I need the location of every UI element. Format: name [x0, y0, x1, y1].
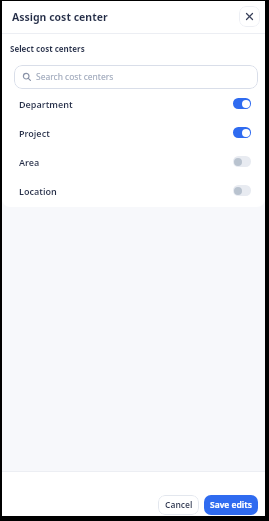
staticText: Select cost centers	[10, 43, 85, 54]
staticText: Project	[19, 127, 50, 139]
button[interactable]: Search cost centers	[14, 65, 258, 89]
button[interactable]: Department	[19, 89, 251, 118]
staticText: Search cost centers	[36, 71, 114, 83]
button[interactable]: Area	[19, 147, 251, 176]
button[interactable]	[233, 156, 251, 167]
staticText: Location	[19, 185, 57, 197]
button[interactable]: Location	[19, 176, 251, 205]
button[interactable]	[233, 98, 251, 109]
button[interactable]	[239, 6, 260, 27]
staticText: Area	[19, 156, 40, 168]
button[interactable]: Save edits	[204, 495, 258, 515]
staticText: Assign cost center	[12, 10, 108, 24]
staticText: Department	[19, 98, 73, 110]
staticText: Cancel	[165, 499, 193, 511]
button[interactable]: Cancel	[158, 495, 199, 515]
button[interactable]: Project	[19, 118, 251, 147]
button[interactable]	[233, 185, 251, 196]
button[interactable]	[233, 127, 251, 138]
staticText: Save edits	[210, 499, 252, 511]
